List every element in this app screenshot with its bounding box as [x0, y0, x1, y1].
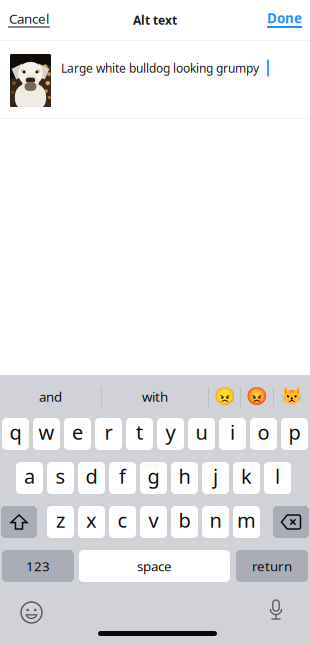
staticText: return — [252, 557, 292, 575]
button[interactable]: j — [202, 462, 229, 494]
button[interactable]: Pouting face emoji — [241, 378, 273, 414]
staticText: q — [9, 419, 21, 445]
button[interactable]: h — [171, 462, 198, 494]
staticText: t — [136, 419, 143, 445]
button[interactable]: t — [126, 418, 153, 450]
button[interactable]: o — [250, 418, 277, 450]
button[interactable]: Angry face emoji — [209, 378, 240, 414]
staticText: l — [275, 463, 280, 489]
staticText: k — [241, 463, 252, 489]
staticText: m — [237, 507, 256, 533]
staticText: v — [148, 507, 158, 533]
button[interactable]: u — [188, 418, 215, 450]
button[interactable]: Pouting cat emoji — [274, 378, 310, 414]
staticText: g — [147, 463, 159, 489]
button[interactable]: r — [95, 418, 122, 450]
button[interactable]: c — [109, 506, 136, 538]
button[interactable]: m — [233, 506, 260, 538]
staticText: w — [38, 419, 54, 445]
staticText: with — [142, 388, 168, 405]
button[interactable]: f — [109, 462, 136, 494]
button[interactable]: with — [102, 378, 208, 414]
button[interactable]: l — [264, 462, 291, 494]
staticText: Large white bulldog looking grumpy — [61, 60, 259, 76]
button[interactable]: y — [157, 418, 184, 450]
staticText: h — [178, 463, 190, 489]
staticText: Done — [267, 9, 302, 27]
button[interactable]: space — [79, 550, 230, 582]
staticText: u — [195, 419, 207, 445]
button[interactable]: z — [47, 506, 74, 538]
staticText: 😾 — [281, 387, 303, 406]
staticText: f — [119, 463, 126, 489]
staticText: n — [209, 507, 221, 533]
staticText: c — [117, 507, 127, 533]
button[interactable]: Emoji keyboard — [0, 602, 63, 623]
button[interactable]: s — [47, 462, 74, 494]
staticText: Cancel — [9, 10, 49, 27]
button[interactable]: n — [202, 506, 229, 538]
button[interactable]: Shift — [1, 506, 37, 538]
staticText: o — [257, 419, 269, 445]
staticText: space — [137, 557, 172, 575]
button[interactable]: q — [2, 418, 29, 450]
staticText: Alt text — [133, 12, 177, 28]
staticText: d — [85, 463, 97, 489]
button[interactable]: g — [140, 462, 167, 494]
staticText: y — [165, 419, 175, 445]
staticText: and — [39, 388, 62, 405]
button[interactable]: p — [281, 418, 308, 450]
button[interactable]: w — [33, 418, 60, 450]
button[interactable]: a — [16, 462, 43, 494]
button[interactable]: i — [219, 418, 246, 450]
staticText: 123 — [26, 557, 50, 575]
button[interactable]: k — [233, 462, 260, 494]
button[interactable]: Done — [259, 0, 310, 40]
button[interactable]: Delete — [273, 506, 309, 538]
button[interactable]: Cancel — [0, 0, 58, 40]
staticText: b — [178, 507, 190, 533]
button[interactable]: v — [140, 506, 167, 538]
staticText: a — [24, 463, 35, 489]
staticText: s — [55, 463, 65, 489]
staticText: j — [213, 463, 218, 489]
staticText: p — [288, 419, 300, 445]
button[interactable]: b — [171, 506, 198, 538]
staticText: r — [104, 419, 112, 445]
button[interactable]: e — [64, 418, 91, 450]
staticText: 😠 — [213, 387, 235, 406]
staticText: x — [86, 507, 97, 533]
staticText: z — [56, 507, 65, 533]
staticText: i — [230, 419, 235, 445]
staticText: 😡 — [246, 387, 268, 406]
button[interactable]: 123 — [2, 550, 74, 582]
button[interactable]: return — [236, 550, 308, 582]
button[interactable]: Dictate — [249, 600, 303, 620]
button[interactable]: d — [78, 462, 105, 494]
button[interactable]: and — [0, 378, 101, 414]
button[interactable]: x — [78, 506, 105, 538]
staticText: e — [72, 419, 83, 445]
